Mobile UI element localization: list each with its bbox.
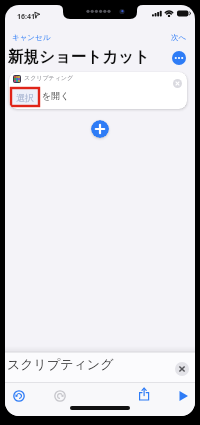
button[interactable] bbox=[54, 390, 66, 402]
staticText: 次へ bbox=[171, 33, 187, 42]
button[interactable]: キャンセル bbox=[12, 30, 52, 44]
staticText: キャンセル bbox=[12, 33, 51, 42]
button[interactable] bbox=[175, 362, 189, 376]
button[interactable]: 次へ bbox=[171, 30, 191, 44]
staticText: スクリプティング bbox=[24, 74, 74, 82]
button[interactable]: 選択 bbox=[11, 88, 39, 106]
button[interactable] bbox=[172, 51, 186, 65]
button[interactable] bbox=[179, 391, 188, 401]
button[interactable] bbox=[138, 387, 151, 401]
button[interactable] bbox=[173, 79, 182, 88]
button[interactable] bbox=[13, 390, 25, 402]
staticText: スクリプティング bbox=[7, 356, 114, 372]
staticText: 新規ショートカット bbox=[8, 47, 150, 67]
button[interactable] bbox=[91, 120, 109, 138]
staticText: を開く bbox=[42, 90, 70, 101]
button[interactable]: スクリプティング bbox=[9, 72, 187, 109]
staticText: 16:41 bbox=[17, 12, 35, 22]
staticText: 選択 bbox=[16, 92, 34, 103]
